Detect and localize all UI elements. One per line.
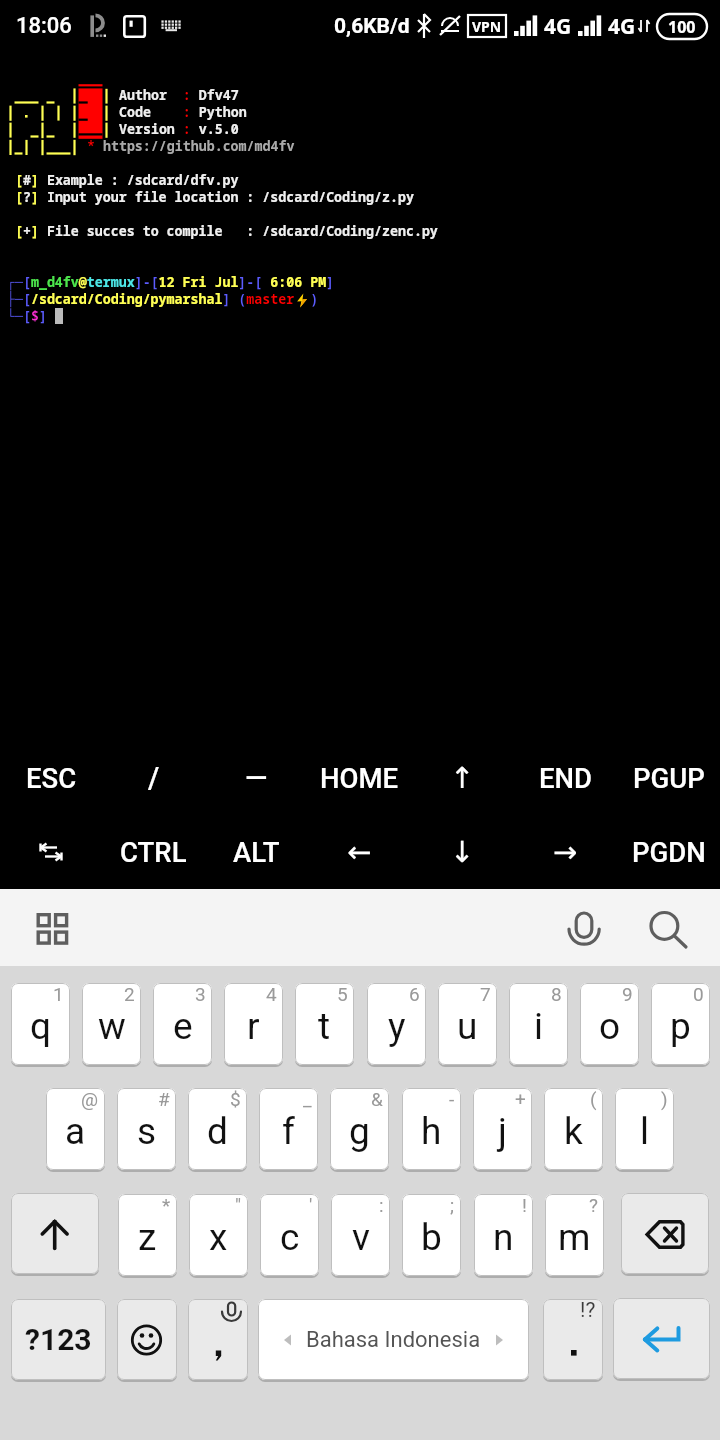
staticText: c — [280, 1216, 300, 1259]
button[interactable]: Shift — [11, 1193, 99, 1274]
button[interactable]: ! — [474, 1194, 533, 1276]
staticText: k — [564, 1110, 583, 1153]
staticText: z — [138, 1216, 157, 1259]
staticText: Code : Python — [119, 103, 247, 121]
staticText: CTRL — [120, 836, 187, 868]
staticText: p — [670, 1005, 691, 1048]
button[interactable]: ALT — [205, 815, 308, 889]
staticText: 0,6KB/d — [334, 14, 410, 39]
button[interactable]: 0 — [651, 983, 710, 1065]
staticText: ? — [589, 1194, 598, 1216]
staticText: Version : v.5.0 — [119, 120, 239, 138]
button[interactable]: Search — [634, 893, 704, 962]
button[interactable]: 3 — [153, 983, 212, 1065]
staticText: n — [493, 1216, 514, 1259]
button[interactable]: Enter — [613, 1298, 710, 1379]
staticText: b — [421, 1216, 442, 1259]
button[interactable]: Emoji — [117, 1299, 177, 1380]
staticText: ← — [347, 835, 372, 869]
staticText: x — [209, 1216, 228, 1259]
staticText: HOME — [320, 762, 399, 794]
staticText: g — [349, 1110, 370, 1153]
staticText: d — [207, 1110, 228, 1153]
button[interactable]: 9 — [580, 983, 639, 1065]
button[interactable]: ? — [545, 1194, 604, 1276]
button[interactable]: PGUP — [617, 741, 720, 815]
button[interactable]: 2 — [82, 983, 141, 1065]
button[interactable]: $ — [188, 1088, 247, 1170]
button[interactable]: ↓ — [411, 815, 514, 889]
button[interactable]: @ — [46, 1088, 105, 1170]
button[interactable]: ESC — [0, 741, 102, 815]
button[interactable]: CTRL — [102, 815, 205, 889]
button[interactable]: ← — [308, 815, 411, 889]
staticText: 18:06 — [16, 13, 72, 39]
staticText: : — [379, 1194, 384, 1216]
button[interactable]: ; — [402, 1194, 461, 1276]
staticText: i — [534, 1005, 543, 1048]
button[interactable]: 5 — [295, 983, 354, 1065]
staticText: _ — [303, 1088, 312, 1110]
button[interactable]: ) — [615, 1088, 674, 1170]
button[interactable]: → — [514, 815, 617, 889]
button[interactable]: _ — [259, 1088, 318, 1170]
button[interactable]: # — [117, 1088, 176, 1170]
staticText: PGDN — [632, 836, 706, 868]
staticText: VPN — [472, 17, 502, 36]
button[interactable]: PGDN — [617, 815, 720, 889]
button[interactable]: Space — [258, 1299, 529, 1380]
staticText: 7 — [480, 983, 491, 1005]
staticText: → — [553, 835, 578, 869]
staticText: !? — [580, 1299, 596, 1323]
button[interactable]: Backspace — [621, 1193, 709, 1274]
staticText: ' — [309, 1194, 313, 1216]
staticText: ├─[/sdcard/Coding/pymarshal] (masterxx) — [7, 290, 319, 308]
button[interactable]: / — [102, 741, 205, 815]
button[interactable]: !? — [543, 1299, 603, 1380]
staticText: ALT — [233, 836, 280, 868]
staticText: └─[$] — [7, 307, 47, 325]
button[interactable]: ( — [544, 1088, 603, 1170]
staticText: v — [352, 1216, 370, 1259]
button[interactable]: 7 — [438, 983, 497, 1065]
button[interactable]: ' — [260, 1194, 319, 1276]
staticText: u — [457, 1005, 478, 1048]
staticText: - — [449, 1088, 455, 1110]
button[interactable]: HOME — [308, 741, 411, 815]
staticText: q — [30, 1005, 52, 1048]
staticText: $ — [230, 1088, 241, 1110]
button[interactable]: 4 — [224, 983, 283, 1065]
button[interactable]: Clipboard — [16, 893, 88, 962]
staticText: END — [539, 762, 592, 794]
button[interactable]: 1 — [11, 983, 70, 1065]
button[interactable]: 8 — [509, 983, 568, 1065]
button[interactable]: + — [473, 1088, 532, 1170]
button[interactable]: 6 — [367, 983, 426, 1065]
button[interactable]: * — [118, 1194, 177, 1276]
button[interactable]: - — [402, 1088, 461, 1170]
button[interactable]: Tab — [0, 815, 102, 889]
staticText: * https://github.com/md4fv — [87, 137, 295, 155]
button[interactable]: END — [514, 741, 617, 815]
button[interactable]: " — [189, 1194, 248, 1276]
button[interactable]: & — [330, 1088, 389, 1170]
button[interactable]: ↑ — [411, 741, 514, 815]
staticText: h — [421, 1110, 442, 1153]
staticText: e — [173, 1005, 193, 1048]
staticText: * — [162, 1194, 171, 1216]
button[interactable] — [188, 1299, 248, 1380]
button[interactable]: Voice input — [550, 893, 620, 962]
staticText: 9 — [622, 983, 633, 1005]
staticText: 4G — [608, 12, 636, 41]
button[interactable]: : — [331, 1194, 390, 1276]
staticText: y — [388, 1005, 406, 1048]
staticText: ! — [522, 1194, 527, 1216]
staticText: 1 — [53, 983, 64, 1005]
button[interactable]: ?123 — [11, 1299, 106, 1380]
staticText: ESC — [26, 762, 77, 794]
button[interactable]: — — [205, 741, 308, 815]
staticText: PGUP — [633, 762, 705, 794]
staticText: ┌─[m_d4fv@termux]-[12 Fri Jul]-[ 6:06 PM… — [7, 273, 335, 291]
staticText: ↑ — [450, 761, 475, 795]
staticText: f — [282, 1110, 295, 1153]
